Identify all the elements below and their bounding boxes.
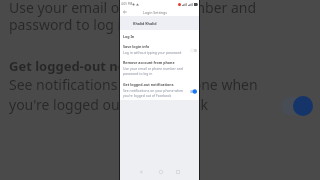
staticText: Use your email or phone number and [123, 66, 183, 71]
staticText: Use your email or phone number and [9, 0, 257, 17]
button[interactable]: Remove account from phone [120, 60, 199, 78]
staticText: See notifications on your phone when [9, 75, 258, 94]
button[interactable]: Home [158, 169, 164, 175]
button[interactable]: Back [138, 169, 144, 175]
button[interactable]: Logged-out notifications toggle [281, 96, 313, 116]
staticText: Save login info [123, 44, 150, 49]
button[interactable]: Toggle [190, 48, 197, 53]
staticText: Remove account from phone [123, 60, 175, 65]
staticText: Get logged-out notifications [123, 82, 174, 87]
button[interactable]: Get logged-out notifications [120, 82, 199, 100]
staticText: you're logged out of Facebook [9, 95, 208, 114]
staticText: you're logged out of Facebook [123, 93, 172, 98]
staticText: Log In [123, 34, 135, 39]
staticText: See notifications on your phone when [123, 88, 184, 93]
staticText: Login Settings [143, 10, 168, 15]
button[interactable]: Back [123, 10, 127, 14]
staticText: 4:05 PM [121, 2, 133, 6]
button[interactable]: Toggle [190, 89, 197, 94]
button[interactable]: Save login info [120, 44, 199, 56]
staticText: Get logged-out notifications [9, 57, 192, 75]
staticText: password to log in [9, 15, 130, 34]
staticText: password to log in [123, 71, 153, 76]
button[interactable]: Recent apps [175, 169, 181, 175]
staticText: Log in without typing your password [123, 50, 182, 55]
staticText: Khalid Khalid [133, 21, 157, 26]
